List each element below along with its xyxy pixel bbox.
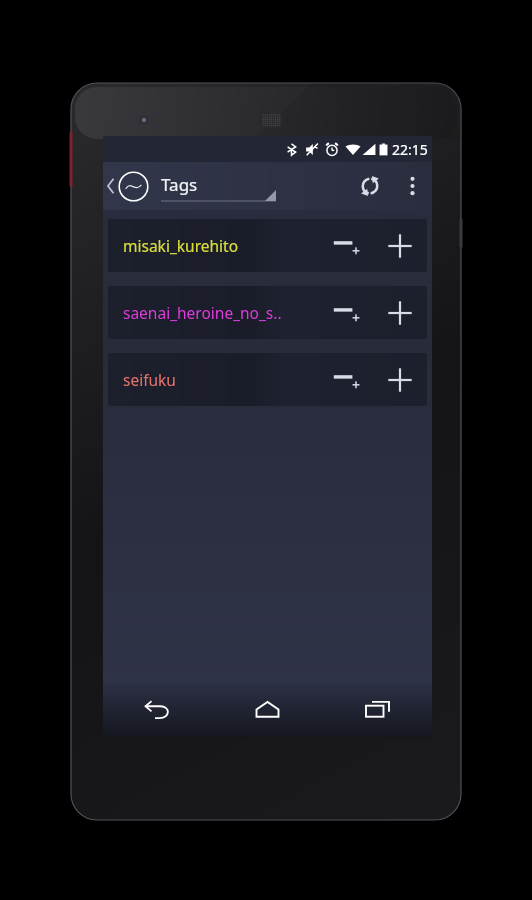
staticText: seifuku [123,369,321,390]
staticText: saenai_heroine_no_s.. [123,302,321,323]
button[interactable]: Tags [161,164,276,208]
button[interactable]: Exclude misaki_kurehito [321,219,373,272]
staticText: misaki_kurehito [123,235,321,256]
button[interactable]: Home [212,682,322,737]
button[interactable]: seifuku [108,353,427,406]
staticText: 22:15 [392,140,428,159]
button[interactable]: Exclude saenai_heroine_no_s.. [321,286,373,339]
button[interactable]: Refresh [346,162,394,210]
button[interactable]: Add seifuku [373,353,427,406]
staticText: Tags [161,173,198,196]
button[interactable]: Back [103,682,212,737]
button[interactable]: More options [394,162,430,210]
button[interactable]: Add misaki_kurehito [373,219,427,272]
button[interactable]: misaki_kurehito [108,219,427,272]
button[interactable]: Navigate up [103,162,151,210]
button[interactable]: Exclude seifuku [321,353,373,406]
button[interactable]: Add saenai_heroine_no_s.. [373,286,427,339]
button[interactable]: saenai_heroine_no_s.. [108,286,427,339]
button[interactable]: Recent apps [322,682,432,737]
